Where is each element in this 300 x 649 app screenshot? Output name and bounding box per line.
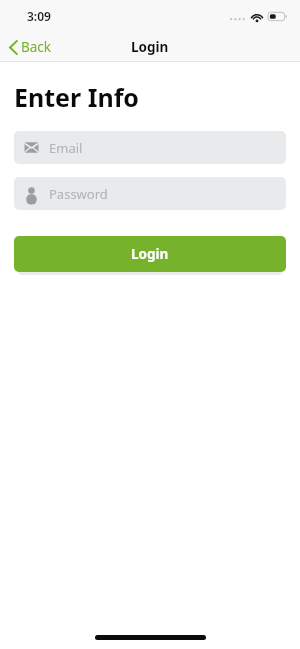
button[interactable]: Email <box>14 131 286 164</box>
staticText: 3:09 <box>27 8 51 24</box>
button[interactable]: Back <box>0 34 62 60</box>
button[interactable]: Password <box>14 177 286 210</box>
staticText: Password <box>49 185 108 203</box>
staticText: Back <box>21 38 52 56</box>
button[interactable]: Login <box>14 236 286 272</box>
staticText: Email <box>49 139 83 157</box>
staticText: Login <box>131 38 169 56</box>
staticText: Enter Info <box>14 80 139 114</box>
staticText: Login <box>131 245 169 263</box>
